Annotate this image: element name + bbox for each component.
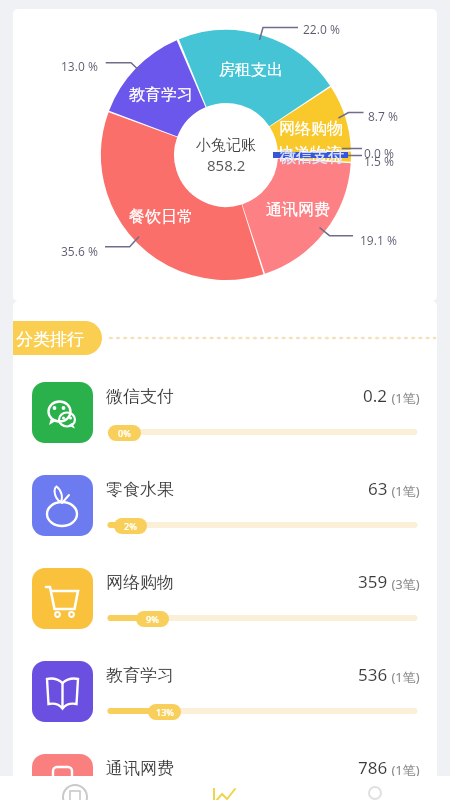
staticText: 858.2 <box>207 155 246 175</box>
staticText: 通讯网费 <box>106 758 174 779</box>
staticText: 13% <box>156 706 174 718</box>
staticText: 8.7 % <box>368 108 399 124</box>
staticText: 微信支付 <box>280 147 344 167</box>
staticText: 35.6 % <box>61 243 98 259</box>
staticText: 359 <box>358 570 388 593</box>
button[interactable]: Me <box>300 776 450 800</box>
staticText: (3笔) <box>388 575 420 593</box>
staticText: 微信支付 <box>106 386 174 407</box>
button[interactable]: 微信支付 <box>13 368 437 461</box>
staticText: 教育学习 <box>129 85 193 105</box>
staticText: 网络购物 <box>106 572 174 593</box>
staticText: 536 <box>358 663 388 686</box>
staticText: 22.0 % <box>303 21 340 37</box>
staticText: (1笔) <box>388 482 420 500</box>
staticText: 零食水果 <box>106 479 174 500</box>
staticText: 通讯网费 <box>266 200 330 220</box>
staticText: (1笔) <box>388 668 420 686</box>
button[interactable]: Bills <box>0 776 150 800</box>
staticText: 小兔记账 <box>196 136 256 155</box>
staticText: 网络购物 <box>279 119 343 139</box>
staticText: 19.1 % <box>360 232 397 248</box>
button[interactable]: Charts <box>150 776 300 800</box>
staticText: 房租支出 <box>219 60 283 80</box>
button[interactable]: 零食水果 <box>13 461 437 554</box>
staticText: 分类排行 <box>16 329 84 350</box>
staticText: (1笔) <box>388 389 420 407</box>
staticText: 1.5 % <box>364 153 395 169</box>
staticText: 63 <box>368 477 388 500</box>
staticText: 0% <box>118 427 131 439</box>
staticText: 9% <box>146 613 159 625</box>
staticText: 0.0 % <box>364 145 395 161</box>
staticText: 786 <box>358 756 388 779</box>
staticText: 0.2 <box>363 384 388 407</box>
staticText: 餐饮日常 <box>129 207 193 227</box>
button[interactable]: 通讯网费 <box>13 740 437 791</box>
staticText: (1笔) <box>388 761 420 779</box>
staticText: 2% <box>124 520 137 532</box>
staticText: 13.0 % <box>61 58 98 74</box>
staticText: 教育学习 <box>106 665 174 686</box>
button[interactable]: 分类排行 <box>13 321 102 355</box>
staticText: 快递物流 <box>278 144 342 164</box>
button[interactable]: 教育学习 <box>13 647 437 740</box>
button[interactable]: 网络购物 <box>13 554 437 647</box>
